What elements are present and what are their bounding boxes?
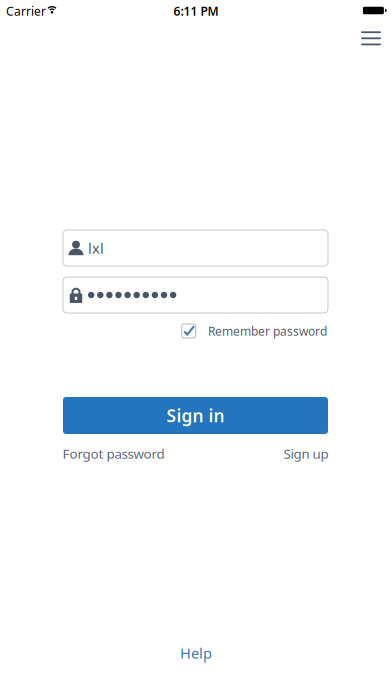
button[interactable]: Sign in	[63, 397, 328, 434]
button[interactable]: Remember password	[178, 320, 330, 342]
button[interactable]: Password	[63, 277, 328, 313]
staticText: Forgot password	[62, 445, 164, 462]
button[interactable]: Sign up	[283, 445, 328, 462]
staticText: lxl	[88, 238, 104, 258]
staticText: 6:11 PM	[173, 3, 218, 19]
staticText: Remember password	[208, 323, 327, 339]
staticText: Sign up	[283, 445, 328, 462]
button[interactable]: Forgot password	[62, 445, 164, 462]
staticText: Help	[180, 643, 212, 663]
button[interactable]: Help	[180, 643, 212, 663]
button[interactable]: Username	[63, 230, 328, 266]
button[interactable]: Menu	[354, 25, 388, 51]
staticText: Sign in	[166, 404, 224, 427]
staticText: Carrier	[6, 3, 46, 19]
